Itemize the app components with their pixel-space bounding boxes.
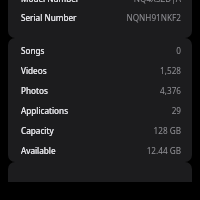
- staticText: 1,528: [160, 65, 181, 76]
- staticText: 0: [176, 45, 181, 56]
- button[interactable]: Serial Number: [8, 8, 192, 27]
- staticText: NQNH91NKF2: [126, 12, 181, 23]
- staticText: Model Number: [21, 0, 80, 4]
- button[interactable]: Songs: [8, 40, 192, 60]
- staticText: Available: [21, 145, 56, 156]
- staticText: 29: [171, 105, 181, 116]
- staticText: Photos: [21, 85, 48, 96]
- staticText: Capacity: [21, 125, 54, 136]
- staticText: 128 GB: [153, 125, 181, 136]
- staticText: 12.44 GB: [146, 145, 181, 156]
- button[interactable]: Videos: [8, 60, 192, 80]
- button[interactable]: Applications: [8, 100, 192, 120]
- staticText: NQ4X3ZD|A: [133, 0, 181, 4]
- button[interactable]: Model Number: [8, 0, 192, 8]
- button[interactable]: Available: [8, 140, 192, 160]
- staticText: 4,376: [160, 85, 181, 96]
- staticText: Serial Number: [21, 12, 77, 23]
- button[interactable]: Photos: [8, 80, 192, 100]
- staticText: Songs: [21, 45, 45, 56]
- staticText: Applications: [21, 105, 69, 116]
- button[interactable]: Capacity: [8, 120, 192, 140]
- staticText: Videos: [21, 65, 47, 76]
